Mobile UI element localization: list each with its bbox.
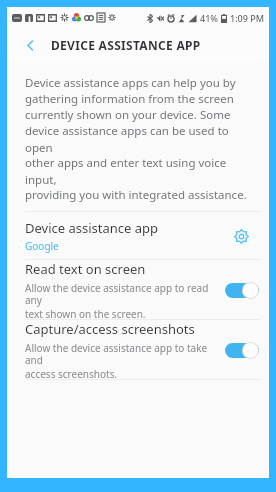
staticText: Capture/access screenshots	[25, 320, 195, 338]
staticText: DEVICE ASSISTANCE APP	[51, 37, 201, 53]
button[interactable]: Read text on screen	[225, 279, 259, 301]
staticText: gathering information from the screen	[25, 91, 234, 107]
staticText: device assistance apps can be used to op…	[25, 123, 257, 155]
staticText: other apps and enter text using voice in…	[25, 155, 257, 187]
staticText: Google	[25, 239, 59, 253]
button[interactable]: Settings	[227, 222, 255, 250]
staticText: providing you with integrated assistance…	[25, 187, 247, 203]
staticText: Allow the device assistance app to take …	[25, 341, 219, 367]
button[interactable]: Device assistance app	[7, 212, 269, 259]
button[interactable]: Capture/access screenshots	[225, 339, 259, 361]
staticText: currently shown on your device. Some	[25, 107, 231, 123]
staticText: 41%	[200, 12, 218, 24]
staticText: text shown on the screen.	[25, 307, 146, 319]
staticText: 1:09 PM	[230, 12, 264, 24]
staticText: Device assistance apps can help you by	[25, 75, 236, 91]
staticText: Device assistance app	[25, 219, 159, 237]
staticText: Allow the device assistance app to read …	[25, 281, 219, 307]
button[interactable]: Back	[17, 32, 43, 58]
staticText: Read text on screen	[25, 260, 146, 278]
button[interactable]: Capture/access screenshots	[7, 320, 269, 379]
button[interactable]: Read text on screen	[7, 260, 269, 319]
staticText: access screenshots.	[25, 367, 118, 379]
